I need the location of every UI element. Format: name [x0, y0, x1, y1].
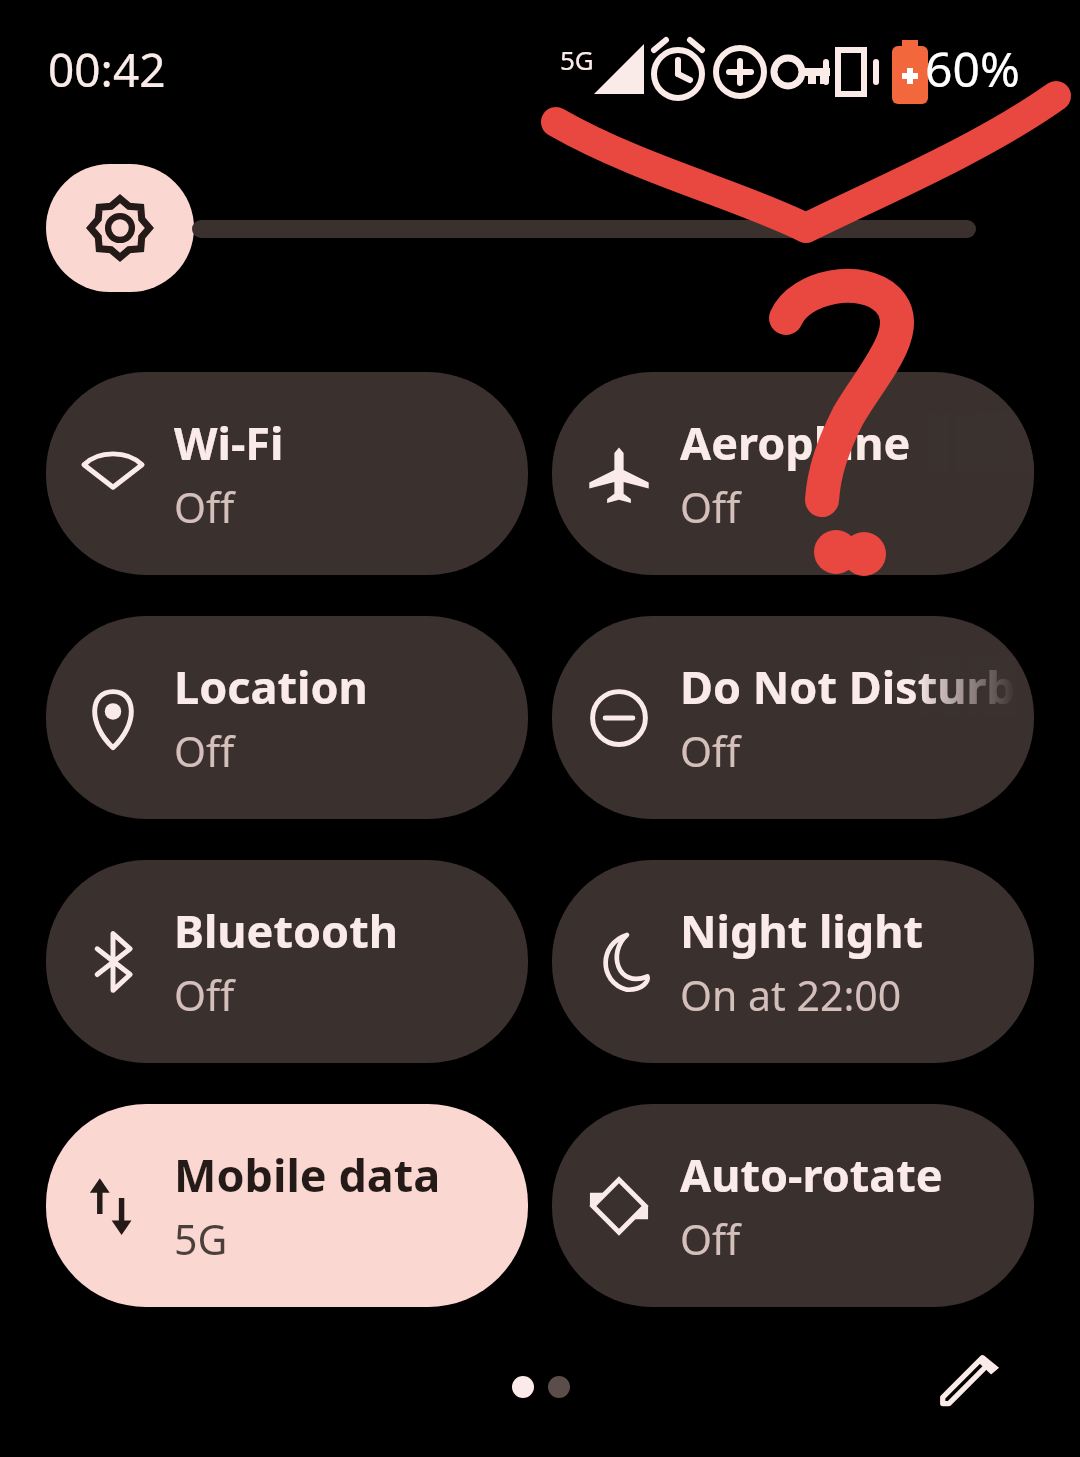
staticText: 00:42 [48, 38, 166, 101]
staticText: Off [680, 479, 741, 535]
button[interactable]: Edit tiles [925, 1340, 1015, 1430]
staticText: On at 22:00 [680, 967, 902, 1023]
button[interactable]: Do Not Disturb [552, 616, 1034, 819]
button[interactable]: Bluetooth [46, 860, 528, 1063]
button[interactable]: Aeroplane mode [552, 372, 1034, 575]
button[interactable]: Brightness slider [192, 220, 976, 238]
staticText: Wi-Fi [174, 412, 284, 473]
staticText: Bluetooth [174, 900, 399, 961]
staticText: Auto-rotate [680, 1144, 943, 1205]
staticText: Aeroplane mode [680, 412, 1034, 473]
staticText: 5G [560, 42, 594, 77]
button[interactable]: Night light [552, 860, 1034, 1063]
staticText: Location [174, 656, 368, 717]
staticText: Do Not Disturb [680, 656, 1016, 717]
staticText: Off [174, 723, 235, 779]
staticText: Off [174, 967, 235, 1023]
staticText: Off [680, 723, 741, 779]
staticText: Off [680, 1211, 741, 1267]
button[interactable]: Wi-Fi [46, 372, 528, 575]
staticText: Off [174, 479, 235, 535]
staticText: Mobile data [174, 1144, 441, 1205]
button[interactable]: Brightness [46, 164, 194, 292]
staticText: Night light [680, 900, 924, 961]
button[interactable]: Location [46, 616, 528, 819]
button[interactable]: Mobile data [46, 1104, 528, 1307]
staticText: 5G [174, 1211, 228, 1267]
button[interactable]: Auto-rotate [552, 1104, 1034, 1307]
staticText: 60% [925, 36, 1020, 101]
